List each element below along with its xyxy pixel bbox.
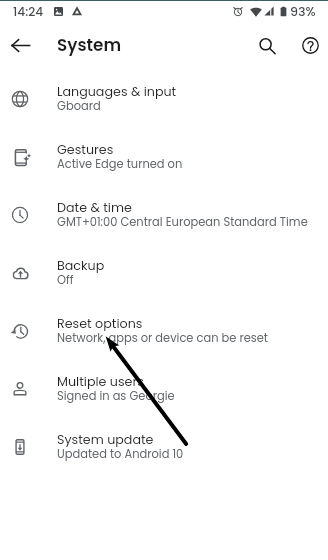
button[interactable]: Date & time <box>0 186 328 244</box>
staticText: 93% <box>290 3 316 21</box>
staticText: System update <box>57 431 154 449</box>
staticText: Signed in as Georgie <box>57 388 175 404</box>
staticText: Backup <box>57 257 105 275</box>
staticText: Network, apps or device can be reset <box>57 330 268 346</box>
staticText: Multiple users <box>57 373 144 391</box>
staticText: Off <box>57 272 74 288</box>
staticText: System <box>57 33 122 57</box>
staticText: Reset options <box>57 315 143 333</box>
staticText: Date & time <box>57 199 132 217</box>
button[interactable]: Backup <box>0 244 328 302</box>
button[interactable]: Multiple users <box>0 360 328 418</box>
button[interactable]: Languages & input <box>0 70 328 128</box>
button[interactable]: Back <box>1 26 39 64</box>
staticText: Active Edge turned on <box>57 156 183 172</box>
button[interactable]: Search <box>248 27 286 65</box>
button[interactable]: Gestures <box>0 128 328 186</box>
button[interactable]: Reset options <box>0 302 328 360</box>
staticText: Gestures <box>57 141 114 159</box>
staticText: 14:24 <box>13 3 44 20</box>
staticText: Gboard <box>57 98 101 114</box>
staticText: Updated to Android 10 <box>57 446 184 462</box>
staticText: GMT+01:00 Central European Standard Time <box>57 214 308 230</box>
button[interactable]: System update <box>0 418 328 476</box>
button[interactable]: Help <box>291 26 328 64</box>
staticText: Languages & input <box>57 83 177 101</box>
